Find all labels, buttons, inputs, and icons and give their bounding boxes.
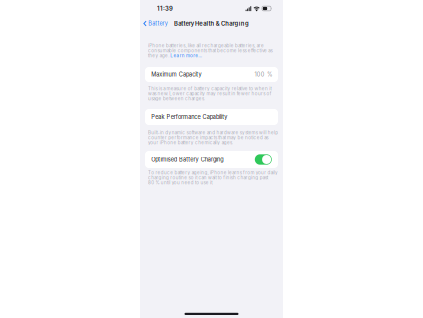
button[interactable]: Battery (140, 18, 167, 29)
staticText: they age. (148, 53, 169, 58)
staticText: usage between charges. (148, 96, 205, 101)
staticText: iPhone batteries, like all rechargeable … (148, 43, 264, 48)
staticText: was new. Lower capacity may result in fe… (148, 91, 271, 96)
staticText: 11:39 (157, 5, 173, 12)
staticText: Optimised Battery Charging (151, 156, 223, 163)
staticText: Maximum Capacity (151, 71, 201, 78)
staticText: Learn more… (170, 53, 202, 58)
staticText: consumable components that become less e… (148, 48, 272, 53)
staticText: Battery (148, 20, 167, 27)
staticText: Battery Health & Charging (174, 20, 249, 27)
staticText: To reduce battery ageing, iPhone learns … (148, 170, 278, 175)
staticText: 80 % until you need to use it. (148, 180, 213, 185)
staticText: Peak Performance Capability (151, 114, 227, 120)
staticText: 100 % (255, 71, 272, 78)
button[interactable]: Peak Performance Capability (145, 114, 278, 120)
button[interactable]: Learn more… (170, 53, 202, 58)
button[interactable]: Optimised Battery Charging (145, 154, 278, 165)
staticText: Built-in dynamic software and hardware s… (148, 130, 278, 135)
staticText: This is a measure of battery capacity re… (148, 86, 271, 91)
staticText: counter performance impacts that may be … (148, 135, 268, 140)
staticText: charging routine so it can wait to finis… (148, 175, 268, 180)
staticText: your iPhone battery chemically ages. (148, 140, 233, 145)
button[interactable]: Maximum Capacity (145, 71, 278, 78)
